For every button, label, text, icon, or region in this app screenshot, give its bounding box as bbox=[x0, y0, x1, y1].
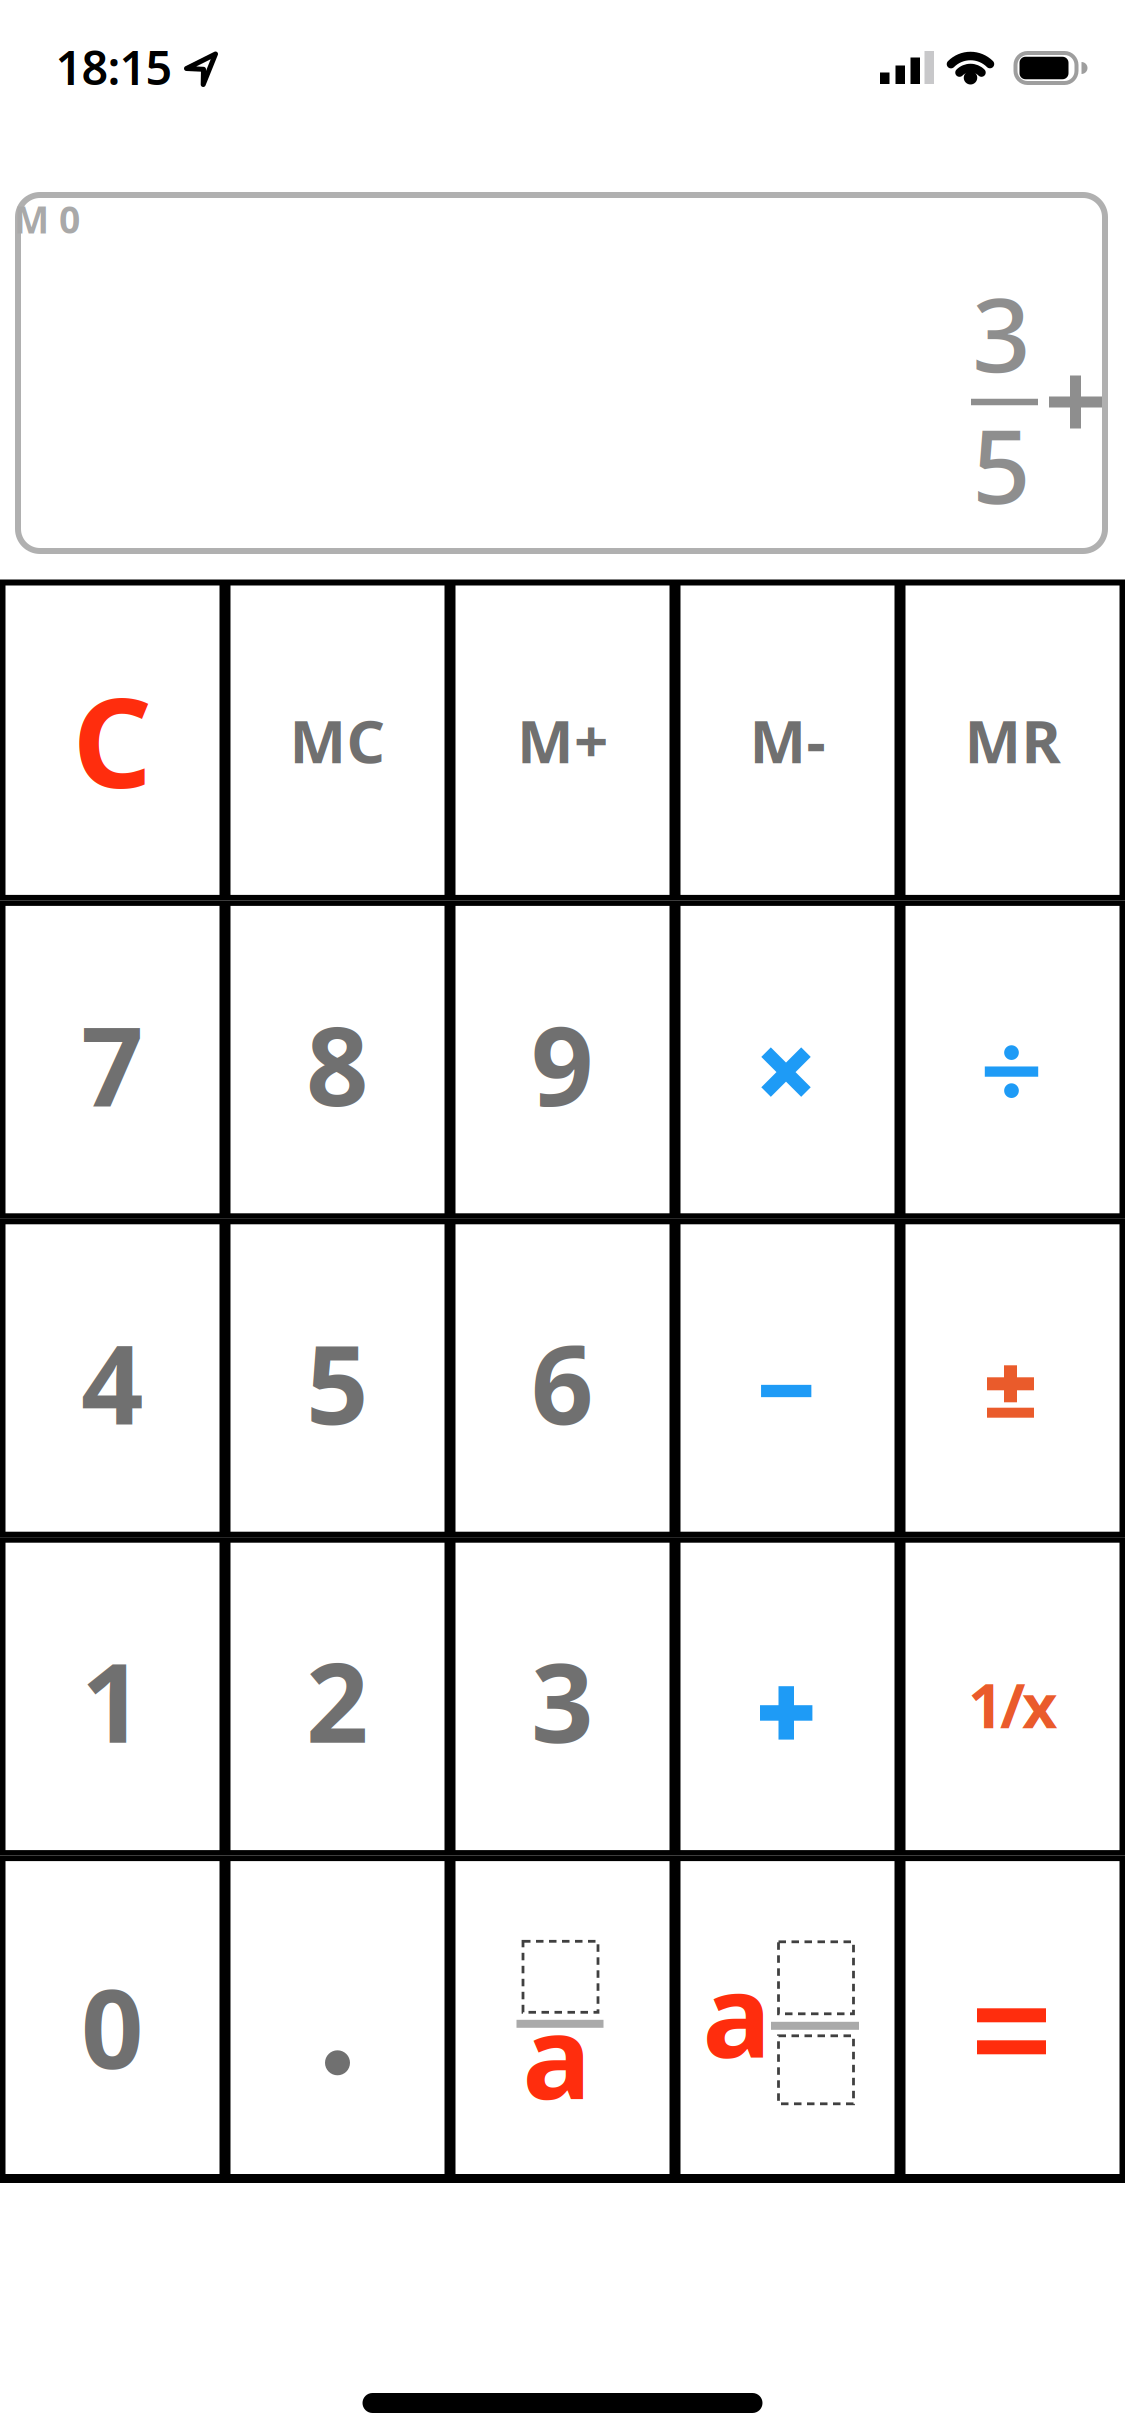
button[interactable]: 6 bbox=[450, 1219, 675, 1537]
button[interactable]: 2 bbox=[225, 1537, 450, 1856]
staticText: 1/x bbox=[968, 1664, 1057, 1745]
staticText: 0 bbox=[81, 1954, 144, 2099]
button[interactable]: M- bbox=[675, 579, 900, 900]
button[interactable]: Divide bbox=[900, 900, 1125, 1219]
button[interactable]: 9 bbox=[450, 900, 675, 1219]
button[interactable]: Add bbox=[675, 1537, 900, 1856]
button[interactable]: MR bbox=[900, 579, 1125, 900]
button[interactable]: Multiply bbox=[675, 900, 900, 1219]
staticText: 3 bbox=[972, 264, 1031, 401]
staticText: 18:15 bbox=[55, 36, 172, 98]
button[interactable]: 0 bbox=[0, 1856, 225, 2183]
staticText: M- bbox=[749, 700, 825, 780]
button[interactable]: M+ bbox=[450, 579, 675, 900]
staticText: 5 bbox=[972, 396, 1031, 532]
button[interactable]: Plus minus bbox=[900, 1219, 1125, 1537]
staticText: C bbox=[72, 658, 152, 822]
button[interactable]: 8 bbox=[225, 900, 450, 1219]
button[interactable]: 4 bbox=[0, 1219, 225, 1537]
staticText: a bbox=[522, 1979, 591, 2131]
staticText: 1 bbox=[81, 1628, 144, 1773]
button[interactable]: Equals bbox=[900, 1856, 1125, 2183]
staticText: M+ bbox=[517, 700, 608, 780]
staticText: 3 bbox=[531, 1628, 594, 1773]
staticText: MR bbox=[964, 700, 1060, 780]
staticText: 8 bbox=[306, 991, 369, 1136]
staticText: 2 bbox=[306, 1628, 369, 1773]
button[interactable]: 3 bbox=[450, 1537, 675, 1856]
staticText: 7 bbox=[81, 991, 144, 1136]
button[interactable]: C bbox=[0, 579, 225, 900]
button[interactable]: Decimal point bbox=[225, 1856, 450, 2183]
button[interactable]: 5 bbox=[225, 1219, 450, 1537]
staticText: MC bbox=[289, 700, 385, 780]
staticText: 5 bbox=[306, 1309, 369, 1455]
staticText: M 0 bbox=[14, 194, 80, 244]
button[interactable]: Mixed number bbox=[675, 1856, 900, 2183]
staticText: 4 bbox=[81, 1309, 144, 1455]
button[interactable]: Fraction bbox=[450, 1856, 675, 2183]
button[interactable]: 1 bbox=[0, 1537, 225, 1856]
button[interactable]: 1/x bbox=[900, 1537, 1125, 1856]
staticText: a bbox=[702, 1937, 771, 2089]
staticText: 9 bbox=[531, 991, 594, 1136]
staticText: 6 bbox=[531, 1309, 594, 1455]
button[interactable]: 7 bbox=[0, 900, 225, 1219]
button[interactable]: Subtract bbox=[675, 1219, 900, 1537]
button[interactable]: MC bbox=[225, 579, 450, 900]
